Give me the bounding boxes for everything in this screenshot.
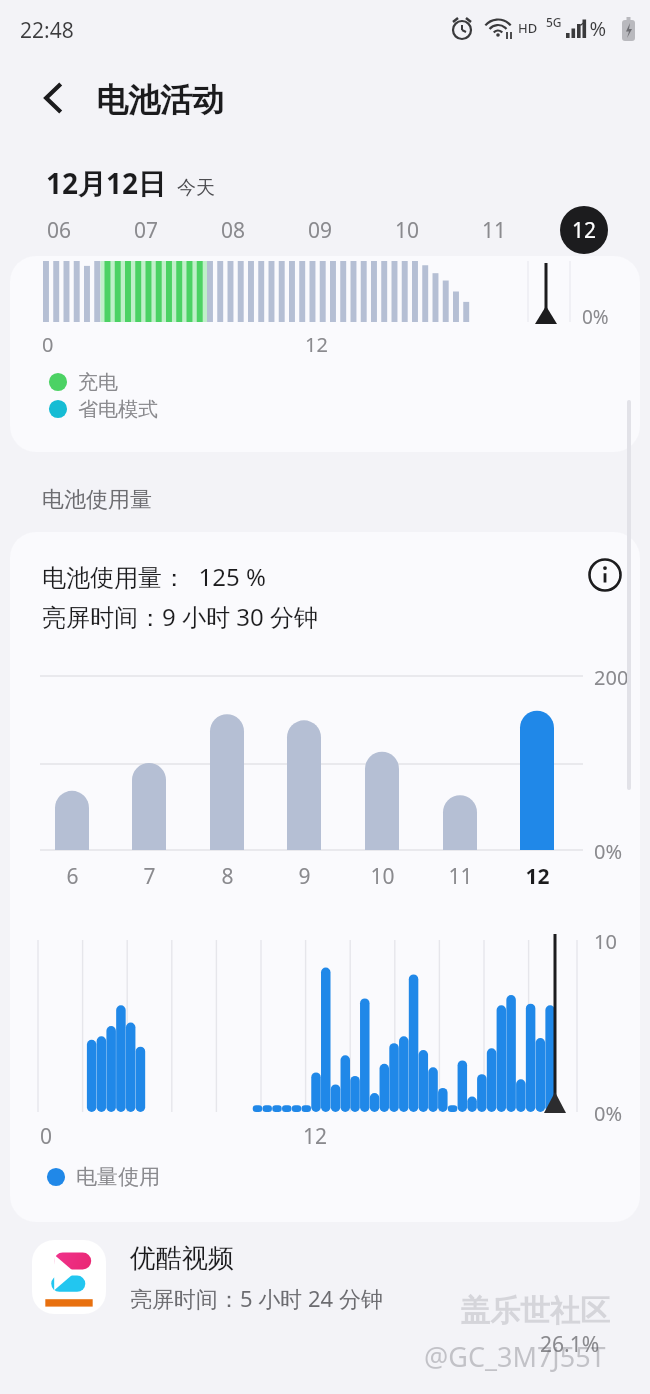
staticText: 优酷视频 — [130, 1242, 234, 1275]
staticText: 07 — [134, 216, 159, 245]
staticText: 10 — [370, 862, 395, 891]
staticText: 10 — [594, 928, 617, 955]
staticText: 电池使用量 — [42, 486, 152, 514]
button[interactable]: Info — [577, 547, 633, 603]
staticText: 200 — [594, 664, 629, 691]
staticText: 09 — [308, 216, 333, 245]
staticText: 12月12日 — [46, 164, 167, 202]
staticText: 盖乐世社区 — [460, 1292, 610, 1330]
staticText: 电池活动 — [96, 80, 224, 120]
staticText: 电池使用量： 125 % — [42, 560, 266, 593]
staticText: 亮屏时间：9 小时 30 分钟 — [42, 600, 318, 633]
staticText: 9 — [298, 862, 311, 891]
staticText: HD — [518, 19, 538, 37]
button[interactable]: 12 — [560, 206, 608, 254]
staticText: 5G — [546, 14, 562, 30]
staticText: 08 — [221, 216, 246, 245]
staticText: 7 — [143, 862, 156, 891]
staticText: 电量使用 — [76, 1164, 160, 1190]
staticText: 22:48 — [20, 16, 74, 45]
staticText: 0% — [582, 304, 609, 330]
staticText: 1% — [578, 15, 607, 42]
staticText: 省电模式 — [78, 397, 158, 422]
staticText: 亮屏时间：5 小时 24 分钟 — [130, 1283, 383, 1313]
staticText: 11 — [448, 862, 473, 891]
staticText: 0% — [594, 838, 623, 865]
staticText: 12 — [305, 331, 328, 358]
button[interactable]: 优酷视频 — [0, 1222, 650, 1332]
button[interactable]: Back — [26, 70, 82, 126]
staticText: 0% — [594, 1100, 623, 1127]
staticText: 今天 — [177, 176, 215, 200]
staticText: 6 — [66, 862, 79, 891]
staticText: 0 — [40, 1122, 53, 1151]
staticText: 12 — [572, 216, 597, 245]
button[interactable]: 0% — [10, 256, 640, 452]
staticText: 06 — [47, 216, 72, 245]
staticText: 8 — [221, 862, 234, 891]
staticText: @GC_3M7J55T — [424, 1338, 606, 1375]
staticText: 26.1% — [540, 1330, 600, 1359]
staticText: 11 — [482, 216, 507, 245]
staticText: 12 — [303, 1122, 328, 1151]
staticText: 12 — [525, 862, 550, 891]
staticText: 充电 — [78, 370, 118, 395]
staticText: 10 — [395, 216, 420, 245]
staticText: 0 — [42, 331, 54, 358]
